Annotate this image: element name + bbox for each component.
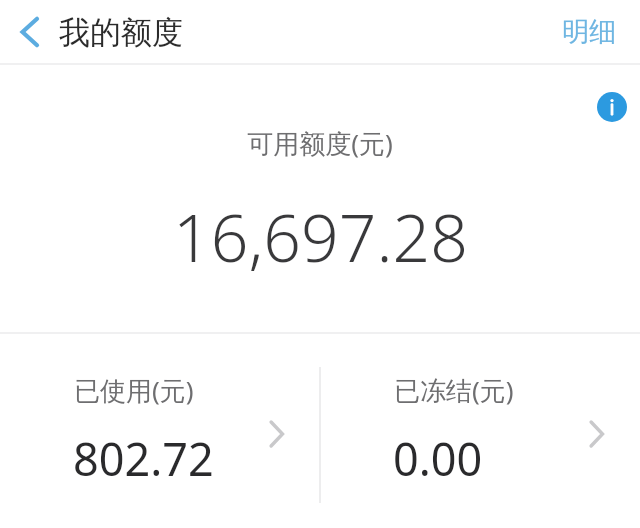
button[interactable]: Information	[597, 92, 627, 122]
staticText: 0.00	[393, 428, 483, 489]
button[interactable]: 已使用(元)	[0, 334, 320, 527]
button[interactable]: 明细	[538, 3, 640, 61]
staticText: 我的额度	[59, 13, 183, 52]
button[interactable]: Back	[4, 6, 56, 58]
staticText: 已冻结(元)	[394, 372, 514, 408]
staticText: 明细	[562, 15, 616, 49]
staticText: 802.72	[73, 428, 214, 489]
staticText: 已使用(元)	[74, 372, 194, 408]
button[interactable]: 已冻结(元)	[320, 334, 640, 527]
staticText: 16,697.28	[173, 191, 468, 281]
staticText: 可用额度(元)	[247, 125, 393, 161]
